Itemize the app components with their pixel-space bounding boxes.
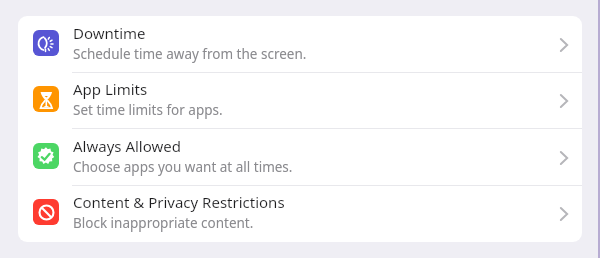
button[interactable]: Downtime bbox=[18, 16, 582, 73]
button[interactable]: App Limits bbox=[18, 73, 582, 129]
button[interactable]: Always Allowed bbox=[18, 129, 582, 186]
other: Downtime bbox=[554, 35, 574, 55]
staticText: App Limits bbox=[73, 79, 148, 99]
staticText: Content & Privacy Restrictions bbox=[73, 192, 285, 212]
button[interactable]: Content & Privacy Restrictions bbox=[18, 186, 582, 242]
other: Content & Privacy Restrictions bbox=[554, 204, 574, 224]
staticText: Choose apps you want at all times. bbox=[73, 158, 293, 176]
staticText: Downtime bbox=[73, 23, 146, 43]
other: Always Allowed bbox=[554, 148, 574, 168]
staticText: Schedule time away from the screen. bbox=[73, 45, 307, 63]
other: App Limits bbox=[554, 91, 574, 111]
staticText: Block inappropriate content. bbox=[73, 214, 254, 232]
staticText: Set time limits for apps. bbox=[73, 101, 223, 119]
staticText: Always Allowed bbox=[73, 136, 181, 156]
